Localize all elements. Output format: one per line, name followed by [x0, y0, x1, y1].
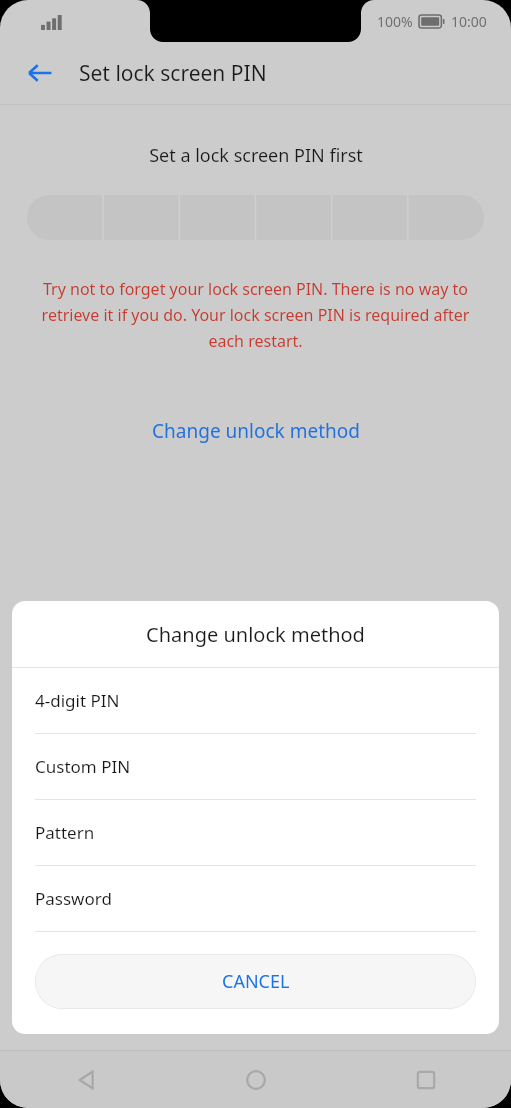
button[interactable]: Pattern	[12, 800, 499, 866]
staticText: 4-digit PIN	[35, 689, 120, 712]
staticText: Password	[35, 887, 112, 910]
button[interactable]: Password	[12, 866, 499, 932]
staticText: Custom PIN	[35, 755, 131, 778]
button[interactable]: Back	[0, 1051, 171, 1108]
staticText: CANCEL	[222, 969, 290, 994]
button[interactable]: Change unlock method	[142, 412, 370, 450]
button[interactable]: 4-digit PIN	[12, 668, 499, 734]
staticText: Set a lock screen PIN first	[149, 143, 363, 168]
staticText: Set lock screen PIN	[79, 59, 267, 88]
staticText: 10:00	[451, 12, 487, 31]
button[interactable]: Back	[16, 49, 64, 97]
staticText: Change unlock method	[152, 418, 360, 444]
button[interactable]: Custom PIN	[12, 734, 499, 800]
staticText: Change unlock method	[146, 621, 365, 648]
button[interactable]: Home	[171, 1051, 341, 1108]
staticText: Try not to forget your lock screen PIN. …	[30, 278, 481, 352]
button[interactable]: Recents	[341, 1051, 511, 1108]
staticText: Pattern	[35, 821, 95, 844]
button[interactable]: CANCEL	[35, 954, 476, 1009]
staticText: 100%	[377, 12, 413, 31]
